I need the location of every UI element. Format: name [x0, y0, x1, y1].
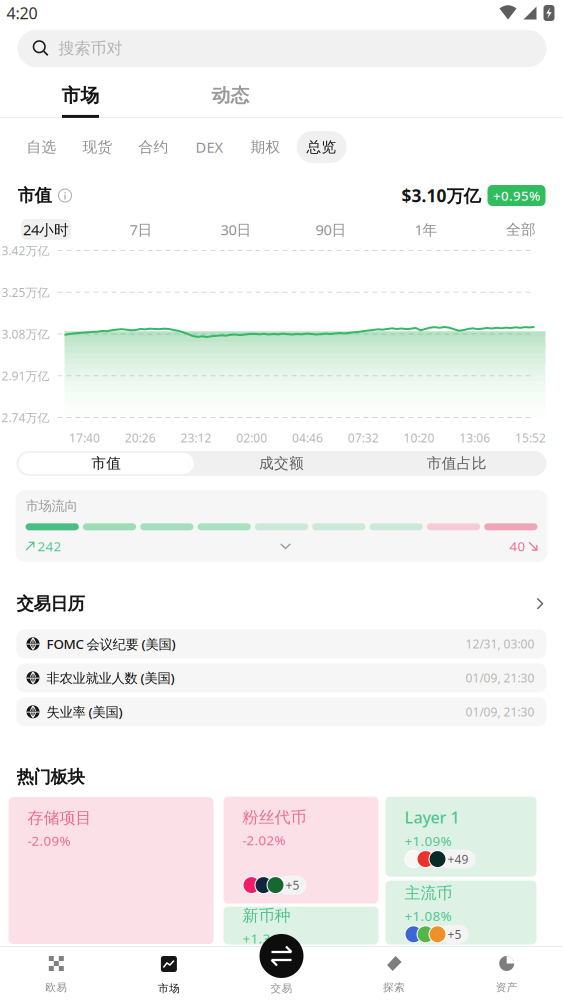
- staticText: Layer 1: [404, 807, 459, 828]
- staticText: 市值: [17, 185, 51, 206]
- staticText: 市场流向: [25, 498, 77, 514]
- staticText: 2.74万亿: [1, 409, 49, 425]
- staticText: 23:12: [180, 430, 211, 446]
- staticText: 交易: [270, 982, 292, 995]
- staticText: +5: [447, 926, 461, 942]
- button[interactable]: 探索: [338, 946, 450, 1001]
- button[interactable]: 总览: [296, 131, 346, 163]
- staticText: +5: [285, 877, 299, 893]
- staticText: 交易日历: [16, 593, 84, 614]
- staticText: +1.09%: [404, 832, 451, 850]
- staticText: 3.25万亿: [1, 284, 49, 300]
- button[interactable]: 24小时: [0, 219, 93, 240]
- staticText: 3.42万亿: [1, 242, 49, 258]
- button[interactable]: DEX: [184, 131, 234, 163]
- button[interactable]: Layer 1: [385, 797, 536, 877]
- staticText: +1.31%: [242, 930, 289, 947]
- button[interactable]: 市值: [18, 453, 194, 474]
- button[interactable]: 粉丝代币: [223, 797, 378, 904]
- staticText: 242: [37, 537, 61, 555]
- button[interactable]: 市场: [113, 946, 225, 1001]
- button[interactable]: 30日: [188, 219, 283, 240]
- staticText: 04:46: [292, 430, 323, 446]
- staticText: 15:52: [515, 430, 546, 446]
- button[interactable]: 成交额: [194, 454, 369, 472]
- staticText: 01/09, 21:30: [465, 704, 534, 720]
- staticText: +1.08%: [404, 907, 451, 925]
- staticText: 24小时: [23, 220, 69, 239]
- staticText: 动态: [211, 84, 249, 107]
- staticText: 热门板块: [16, 766, 84, 788]
- staticText: 新币种: [242, 906, 290, 926]
- staticText: 30日: [220, 220, 251, 239]
- staticText: $3.10万亿: [401, 184, 480, 207]
- button[interactable]: 合约: [128, 131, 178, 163]
- button[interactable]: 主流币: [385, 881, 536, 945]
- button[interactable]: 自选: [16, 131, 66, 163]
- staticText: 13:06: [459, 430, 490, 446]
- button[interactable]: 交易: [259, 934, 303, 978]
- button[interactable]: FOMC 会议纪要 (美国): [0, 629, 563, 658]
- button[interactable]: 现货: [72, 131, 122, 163]
- button[interactable]: 全部: [473, 219, 563, 240]
- staticText: +0.95%: [493, 187, 540, 204]
- staticText: 存储项目: [27, 808, 91, 828]
- staticText: 合约: [138, 138, 168, 156]
- staticText: 20:26: [125, 430, 156, 446]
- staticText: 市场: [158, 982, 180, 995]
- button[interactable]: 交易日历: [0, 593, 563, 614]
- staticText: 市值: [91, 454, 121, 472]
- staticText: 成交额: [259, 454, 304, 472]
- button[interactable]: 7日: [93, 219, 188, 240]
- staticText: 2.91万亿: [1, 368, 49, 384]
- button[interactable]: 存储项目: [8, 797, 213, 944]
- staticText: 1年: [414, 220, 437, 239]
- staticText: DEX: [195, 137, 223, 157]
- staticText: 07:32: [348, 430, 379, 446]
- staticText: 全部: [506, 220, 536, 238]
- staticText: 总览: [306, 138, 336, 156]
- staticText: -2.02%: [242, 831, 285, 849]
- staticText: -2.09%: [27, 832, 70, 849]
- button[interactable]: 非农业就业人数 (美国): [0, 663, 563, 692]
- button[interactable]: 新币种: [223, 907, 378, 945]
- staticText: 失业率 (美国): [46, 703, 122, 721]
- button[interactable]: 搜索币对: [17, 30, 546, 67]
- staticText: FOMC 会议纪要 (美国): [46, 635, 175, 653]
- staticText: 40: [509, 537, 525, 555]
- button[interactable]: 失业率 (美国): [0, 697, 563, 726]
- staticText: 90日: [315, 220, 346, 239]
- staticText: 7日: [129, 220, 152, 239]
- button[interactable]: 90日: [283, 219, 378, 240]
- button[interactable]: 动态: [155, 78, 305, 118]
- staticText: 欧易: [45, 981, 67, 994]
- staticText: +49: [447, 851, 468, 867]
- button[interactable]: 欧易: [0, 946, 113, 1001]
- staticText: 粉丝代币: [242, 808, 306, 827]
- button[interactable]: 期权: [240, 131, 290, 163]
- staticText: 02:00: [236, 430, 267, 446]
- button[interactable]: 市值占比: [369, 454, 544, 472]
- staticText: 非农业就业人数 (美国): [46, 669, 174, 687]
- button[interactable]: 市场: [5, 78, 155, 118]
- button[interactable]: 交易: [225, 946, 338, 1001]
- staticText: 主流币: [404, 883, 452, 903]
- staticText: 期权: [250, 138, 280, 156]
- staticText: 探索: [383, 981, 405, 994]
- staticText: 10:20: [404, 430, 435, 446]
- staticText: 自选: [26, 138, 56, 156]
- staticText: 资产: [496, 981, 518, 994]
- staticText: 17:40: [69, 430, 100, 446]
- staticText: 市场: [61, 84, 99, 107]
- staticText: 市值占比: [427, 454, 487, 472]
- staticText: 3.08万亿: [1, 326, 49, 342]
- staticText: 4:20: [6, 2, 37, 24]
- staticText: 搜索币对: [58, 39, 122, 58]
- button[interactable]: 资产: [450, 946, 563, 1001]
- button[interactable]: 1年: [378, 219, 473, 240]
- staticText: 现货: [82, 138, 112, 156]
- staticText: 12/31, 03:00: [465, 636, 534, 652]
- staticText: 01/09, 21:30: [465, 670, 534, 686]
